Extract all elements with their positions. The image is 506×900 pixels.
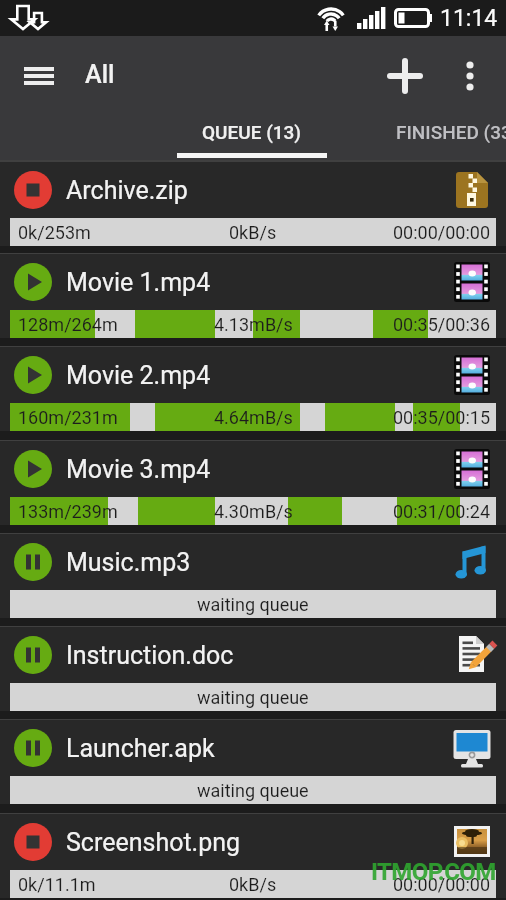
- staticText: QUEUE (13): [202, 121, 302, 143]
- staticText: FINISHED (33): [396, 121, 506, 143]
- button[interactable]: Movie 2.mp4: [0, 346, 506, 440]
- staticText: waiting queue: [197, 687, 309, 708]
- staticText: Screenshot.png: [66, 828, 241, 857]
- button[interactable]: [14, 171, 52, 209]
- button[interactable]: Launcher.apk: [0, 719, 506, 813]
- staticText: Archive.zip: [66, 176, 188, 205]
- staticText: All: [85, 60, 115, 89]
- staticText: Instruction.doc: [66, 641, 234, 670]
- staticText: Movie 3.mp4: [66, 455, 211, 484]
- staticText: 4.30mB/s: [214, 501, 293, 522]
- button[interactable]: [14, 543, 52, 581]
- staticText: 160m/231m: [18, 407, 118, 428]
- staticText: 00:00/00:00: [393, 222, 491, 243]
- button[interactable]: [12, 55, 66, 97]
- button[interactable]: Instruction.doc: [0, 626, 506, 719]
- button[interactable]: [14, 729, 52, 767]
- button[interactable]: [14, 450, 52, 488]
- staticText: Movie 1.mp4: [66, 268, 211, 297]
- button[interactable]: QUEUE (13): [177, 110, 327, 160]
- button[interactable]: Movie 1.mp4: [0, 253, 506, 346]
- staticText: waiting queue: [197, 594, 309, 615]
- button[interactable]: Movie 3.mp4: [0, 440, 506, 533]
- button[interactable]: FINISHED (33): [396, 110, 506, 160]
- staticText: 00:31/00:24: [393, 501, 491, 522]
- staticText: Launcher.apk: [66, 734, 215, 763]
- staticText: Music.mp3: [66, 548, 191, 577]
- button[interactable]: [14, 356, 52, 394]
- staticText: 00:00/00:00: [393, 874, 491, 895]
- button[interactable]: [450, 54, 490, 98]
- staticText: 0k/253m: [18, 222, 91, 243]
- button[interactable]: Archive.zip: [0, 161, 506, 253]
- button[interactable]: [14, 263, 52, 301]
- staticText: 11:14: [440, 5, 498, 32]
- button[interactable]: [14, 636, 52, 674]
- staticText: 00:35/00:15: [393, 407, 491, 428]
- button[interactable]: Screenshot.png: [0, 813, 506, 900]
- staticText: 4.64mB/s: [214, 407, 293, 428]
- staticText: 4.13mB/s: [214, 314, 293, 335]
- staticText: ITMOP.COM: [371, 858, 496, 886]
- button[interactable]: [14, 823, 52, 861]
- button[interactable]: Music.mp3: [0, 533, 506, 626]
- staticText: 00:35/00:36: [393, 314, 491, 335]
- staticText: Movie 2.mp4: [66, 361, 211, 390]
- staticText: 133m/239m: [18, 501, 118, 522]
- staticText: 128m/264m: [18, 314, 118, 335]
- staticText: 0kB/s: [229, 222, 277, 243]
- button[interactable]: [384, 54, 426, 98]
- staticText: 0k/11.1m: [18, 874, 96, 895]
- staticText: 0kB/s: [229, 874, 277, 895]
- staticText: waiting queue: [197, 780, 309, 801]
